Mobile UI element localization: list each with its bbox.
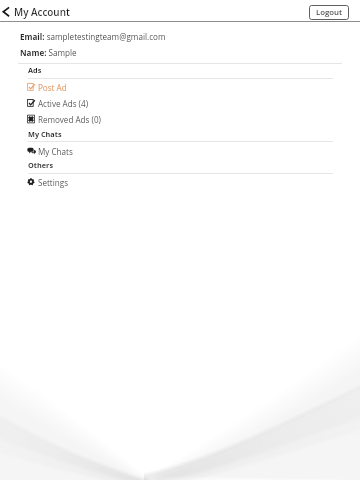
staticText: Email: sampletestingteam@gmail.com bbox=[20, 31, 166, 42]
button[interactable]: Removed Ads (0) bbox=[0, 111, 360, 127]
button[interactable]: Settings bbox=[0, 174, 360, 190]
staticText: Ads bbox=[28, 65, 42, 75]
button[interactable]: Logout bbox=[309, 5, 349, 20]
button[interactable]: Post Ad bbox=[0, 79, 360, 95]
staticText: Others bbox=[28, 160, 54, 170]
staticText: Active Ads (4) bbox=[38, 98, 89, 109]
staticText: Logout bbox=[316, 7, 343, 18]
staticText: My Account bbox=[14, 5, 70, 18]
staticText: Removed Ads (0) bbox=[38, 114, 101, 125]
staticText: My Chats bbox=[28, 129, 62, 139]
staticText: My Chats bbox=[38, 146, 73, 157]
button[interactable]: My Chats bbox=[0, 143, 360, 159]
button[interactable]: Active Ads (4) bbox=[0, 95, 360, 111]
staticText: Settings bbox=[38, 177, 69, 188]
staticText: Post Ad bbox=[38, 82, 67, 93]
staticText: Name: Sample bbox=[20, 47, 77, 58]
button[interactable]: Back bbox=[0, 0, 14, 21]
